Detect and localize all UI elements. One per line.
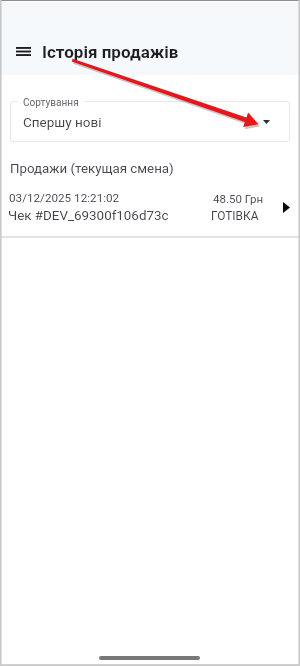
staticText: Продажи (текущая смена)	[10, 161, 174, 177]
staticText: Спершу нові	[23, 114, 102, 130]
staticText: 48.50 Грн	[213, 192, 264, 205]
staticText: Історія продажів	[42, 42, 179, 62]
button[interactable]: Сортування: Спершу нові	[10, 101, 290, 142]
staticText: 03/12/2025 12:21:02	[9, 191, 120, 205]
button[interactable]: Open navigation menu	[9, 38, 37, 65]
staticText: Чек #DEV_69300f106d73c	[8, 208, 169, 224]
staticText: Сортування	[23, 97, 79, 109]
staticText: ГОТІВКА	[211, 209, 259, 223]
button[interactable]: 03/12/2025 12:21:02	[0, 183, 300, 236]
